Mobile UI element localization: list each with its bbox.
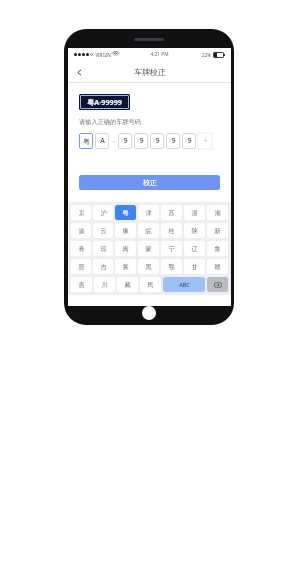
button[interactable]: 川 [94, 277, 115, 292]
button[interactable]: A [95, 133, 109, 149]
staticText: 贵 [78, 281, 85, 289]
button[interactable]: Add character [198, 133, 212, 149]
button[interactable]: 京 [71, 205, 91, 220]
staticText: 闽 [122, 245, 129, 253]
staticText: 津 [145, 209, 152, 217]
button[interactable]: 鲁 [207, 241, 228, 256]
staticText: ABC [179, 281, 190, 288]
staticText: 粤 [122, 209, 129, 217]
staticText: VIRGIN [95, 52, 111, 58]
staticText: 苏 [168, 209, 175, 217]
button[interactable]: 冀 [115, 259, 136, 274]
button[interactable]: Delete [207, 277, 228, 292]
button[interactable]: 校正 [79, 175, 220, 190]
button[interactable]: 9 [182, 133, 196, 149]
staticText: 渝 [78, 227, 85, 235]
staticText: 云 [100, 227, 107, 235]
staticText: 校正 [143, 178, 157, 187]
staticText: 辽 [191, 245, 198, 253]
staticText: 4:21 PM [150, 51, 169, 58]
staticText: 甘 [191, 263, 198, 271]
staticText: 藏 [124, 281, 131, 289]
button[interactable]: ABC [163, 277, 205, 292]
button[interactable]: 粤 [115, 205, 136, 220]
button[interactable]: 津 [138, 205, 159, 220]
button[interactable]: 鄂 [161, 259, 182, 274]
staticText: 桂 [168, 227, 175, 235]
staticText: 9 [155, 136, 160, 146]
button[interactable]: Back [70, 63, 88, 81]
button[interactable]: 豫 [115, 223, 136, 238]
button[interactable]: 藏 [117, 277, 138, 292]
button[interactable]: 晋 [71, 259, 91, 274]
staticText: 新 [214, 227, 221, 235]
button[interactable]: 皖 [138, 223, 159, 238]
staticText: 琼 [100, 245, 107, 253]
staticText: 京 [78, 209, 85, 217]
button[interactable]: 宁 [161, 241, 182, 256]
button[interactable]: 浙 [184, 205, 205, 220]
staticText: 陕 [191, 227, 198, 235]
staticText: 9 [187, 136, 192, 146]
button[interactable]: 9 [134, 133, 148, 149]
staticText: 豫 [122, 227, 129, 235]
button[interactable]: 黑 [138, 259, 159, 274]
button[interactable]: 渝 [71, 223, 91, 238]
staticText: 蒙 [145, 245, 152, 253]
button[interactable]: 琼 [93, 241, 113, 256]
staticText: + [203, 136, 208, 146]
button[interactable]: 赣 [207, 259, 228, 274]
button[interactable]: 陕 [184, 223, 205, 238]
staticText: 沪 [100, 209, 107, 217]
staticText: 22% [202, 52, 211, 58]
button[interactable]: 9 [150, 133, 164, 149]
staticText: 鄂 [168, 263, 175, 271]
button[interactable]: 新 [207, 223, 228, 238]
button[interactable]: 9 [118, 133, 132, 149]
staticText: 粤 [83, 137, 90, 146]
staticText: 赣 [214, 263, 221, 271]
staticText: 9 [171, 136, 176, 146]
staticText: 皖 [145, 227, 152, 235]
button[interactable]: 辽 [184, 241, 205, 256]
staticText: 青 [78, 245, 85, 253]
button[interactable]: 云 [93, 223, 113, 238]
staticText: 黑 [145, 263, 152, 271]
staticText: 冀 [122, 263, 129, 271]
button[interactable]: 贵 [71, 277, 92, 292]
button[interactable]: 蒙 [138, 241, 159, 256]
button[interactable]: 闽 [115, 241, 136, 256]
staticText: 宁 [168, 245, 175, 253]
button[interactable]: 粤 [79, 133, 93, 149]
button[interactable]: 湘 [207, 205, 228, 220]
staticText: 9 [139, 136, 144, 146]
staticText: 湘 [214, 209, 221, 217]
staticText: 民 [147, 281, 154, 289]
staticText: 粤A·99999 [87, 97, 122, 107]
button[interactable]: 9 [166, 133, 180, 149]
staticText: 9 [123, 136, 128, 146]
staticText: 吉 [100, 263, 107, 271]
button[interactable]: 苏 [161, 205, 182, 220]
staticText: 请输入正确的车牌号码 [79, 118, 141, 126]
staticText: 车牌校正 [134, 67, 166, 77]
button[interactable]: 吉 [93, 259, 113, 274]
staticText: · [113, 137, 115, 147]
button[interactable]: 甘 [184, 259, 205, 274]
button[interactable]: 青 [71, 241, 91, 256]
button[interactable]: 沪 [93, 205, 113, 220]
staticText: 浙 [191, 209, 198, 217]
staticText: 川 [101, 281, 108, 289]
staticText: 鲁 [214, 245, 221, 253]
staticText: A [100, 136, 105, 146]
staticText: 晋 [78, 263, 85, 271]
button[interactable]: 民 [140, 277, 161, 292]
button[interactable]: 桂 [161, 223, 182, 238]
